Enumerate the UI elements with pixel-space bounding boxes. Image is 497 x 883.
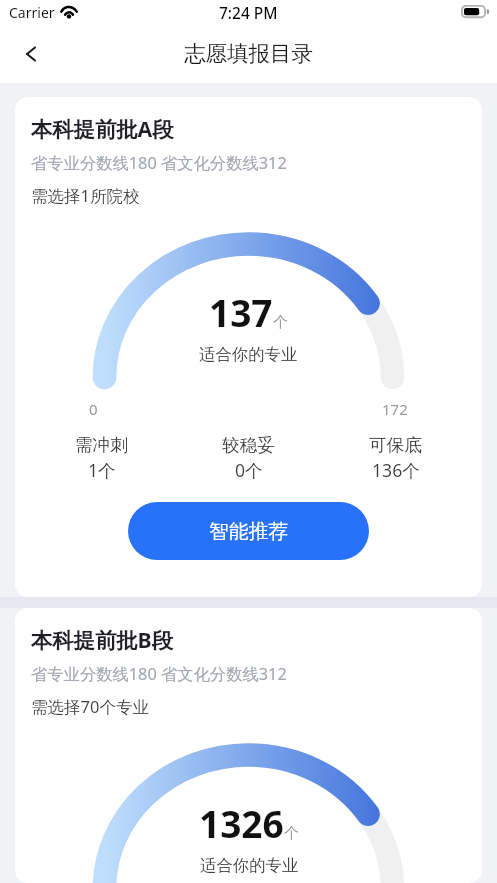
- staticText: 7:24 PM: [219, 2, 278, 23]
- button[interactable]: 本科提前批B段: [15, 608, 482, 883]
- staticText: 可保底: [369, 434, 422, 456]
- button[interactable]: 本科提前批A段: [15, 97, 482, 597]
- staticText: 省专业分数线180 省文化分数线312: [31, 152, 287, 174]
- staticText: 172: [382, 399, 408, 419]
- staticText: 137: [209, 287, 273, 337]
- staticText: 需选择1所院校: [31, 184, 140, 207]
- button[interactable]: Back: [13, 37, 47, 71]
- staticText: 136个: [372, 458, 420, 482]
- staticText: 本科提前批A段: [31, 114, 174, 143]
- staticText: 省专业分数线180 省文化分数线312: [31, 663, 287, 685]
- staticText: 个: [284, 824, 299, 843]
- staticText: 0个: [235, 458, 263, 482]
- staticText: 1326: [199, 798, 284, 848]
- staticText: 适合你的专业: [199, 344, 298, 365]
- staticText: 志愿填报目录: [184, 40, 313, 67]
- staticText: 较稳妥: [222, 434, 275, 456]
- staticText: 1个: [88, 458, 116, 482]
- staticText: 适合你的专业: [200, 855, 299, 876]
- button[interactable]: 智能推荐: [128, 502, 369, 560]
- staticText: 本科提前批B段: [31, 625, 173, 654]
- staticText: 0: [89, 399, 98, 419]
- staticText: 需选择70个专业: [31, 695, 149, 718]
- staticText: 需冲刺: [75, 434, 128, 456]
- staticText: 个: [273, 313, 288, 332]
- staticText: 智能推荐: [209, 519, 289, 544]
- staticText: Carrier: [9, 3, 55, 22]
